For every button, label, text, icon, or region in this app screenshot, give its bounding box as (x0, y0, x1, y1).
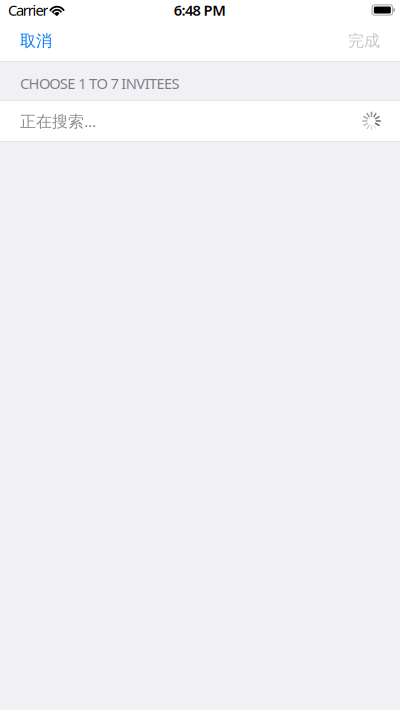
staticText: 6:48 PM (174, 0, 226, 20)
staticText: CHOOSE 1 TO 7 INVITEES (20, 73, 179, 93)
button[interactable]: 取消 (0, 20, 72, 62)
staticText: 正在搜索... (20, 110, 96, 132)
staticText: Carrier (8, 0, 48, 20)
staticText: 取消 (20, 31, 52, 51)
button[interactable]: 完成 (328, 20, 400, 62)
staticText: 完成 (348, 31, 380, 51)
